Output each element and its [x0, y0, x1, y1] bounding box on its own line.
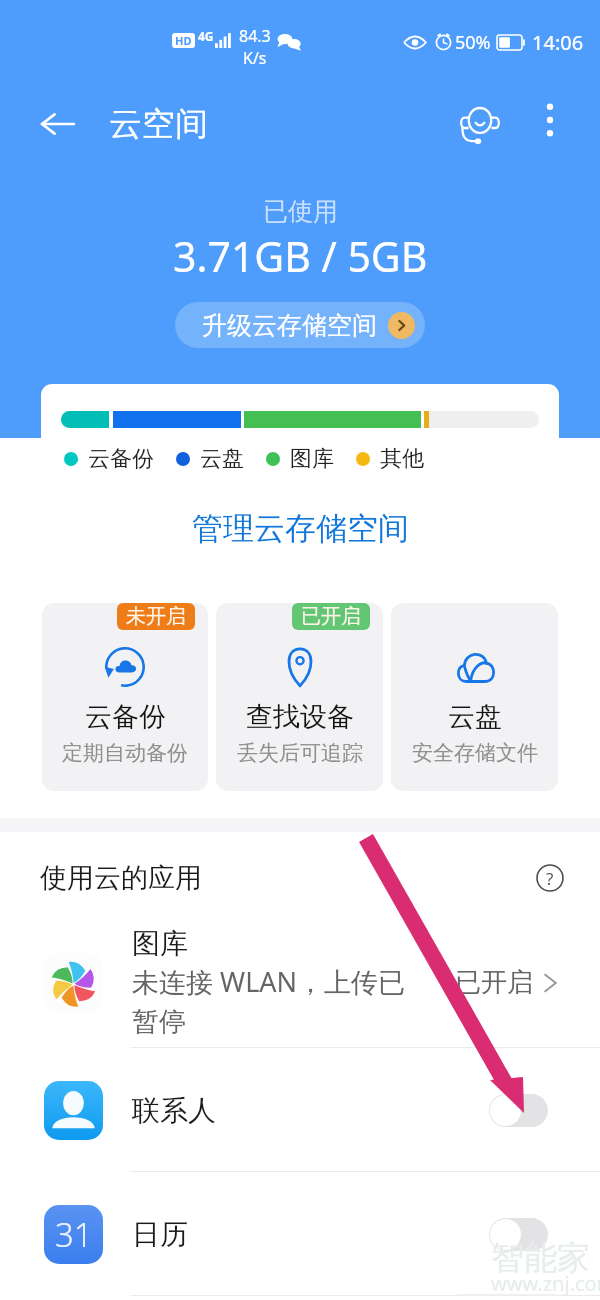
- staticText: K/s: [243, 47, 267, 69]
- staticText: 云盘: [200, 445, 244, 473]
- button[interactable]: Back: [36, 102, 80, 146]
- staticText: 智能家: [491, 1237, 590, 1279]
- staticText: 联系人: [132, 1093, 216, 1128]
- staticText: 云备份: [88, 445, 154, 473]
- staticText: 31: [55, 1212, 93, 1257]
- button[interactable]: 图库: [0, 917, 600, 1048]
- button[interactable]: Toggle: [489, 1094, 548, 1127]
- staticText: 丢失后可追踪: [237, 740, 363, 766]
- button[interactable]: Toggle: [489, 1218, 548, 1251]
- button[interactable]: 云盘: [391, 603, 558, 791]
- staticText: 图库: [290, 445, 334, 473]
- staticText: 其他: [380, 445, 424, 473]
- staticText: 未开启: [126, 604, 186, 629]
- button[interactable]: Help: [532, 860, 568, 896]
- staticText: 日历: [132, 1217, 188, 1252]
- staticText: 云空间: [109, 103, 208, 145]
- staticText: 84.3: [239, 25, 271, 47]
- staticText: HD: [175, 33, 192, 48]
- button[interactable]: 升级云存储空间: [175, 302, 425, 348]
- staticText: 图库: [132, 926, 188, 961]
- staticText: 已使用: [263, 196, 338, 227]
- staticText: 定期自动备份: [62, 740, 188, 766]
- staticText: 云备份: [85, 700, 166, 734]
- staticText: 云盘: [448, 700, 502, 734]
- staticText: 查找设备: [246, 700, 354, 734]
- staticText: 使用云的应用: [40, 861, 202, 895]
- staticText: 升级云存储空间: [202, 310, 377, 341]
- staticText: 未连接 WLAN，上传已 暂停: [132, 963, 406, 1039]
- staticText: 4G: [198, 28, 214, 44]
- staticText: ?: [546, 867, 554, 890]
- button[interactable]: More options: [530, 100, 570, 140]
- staticText: www.znj.com: [491, 1270, 600, 1297]
- staticText: 已开启: [455, 966, 533, 999]
- button[interactable]: 云备份: [41, 384, 559, 574]
- button[interactable]: 未开启: [42, 603, 208, 791]
- staticText: 3.71GB / 5GB: [173, 228, 428, 284]
- staticText: 14:06: [532, 29, 584, 56]
- staticText: 安全存储文件: [412, 740, 538, 766]
- button[interactable]: 31: [0, 1172, 600, 1296]
- button[interactable]: 联系人: [0, 1048, 600, 1172]
- button[interactable]: Customer support: [456, 100, 504, 148]
- staticText: 已开启: [301, 604, 361, 629]
- staticText: 管理云存储空间: [192, 509, 409, 548]
- button[interactable]: 已开启: [216, 603, 383, 791]
- staticText: 50%: [455, 30, 491, 55]
